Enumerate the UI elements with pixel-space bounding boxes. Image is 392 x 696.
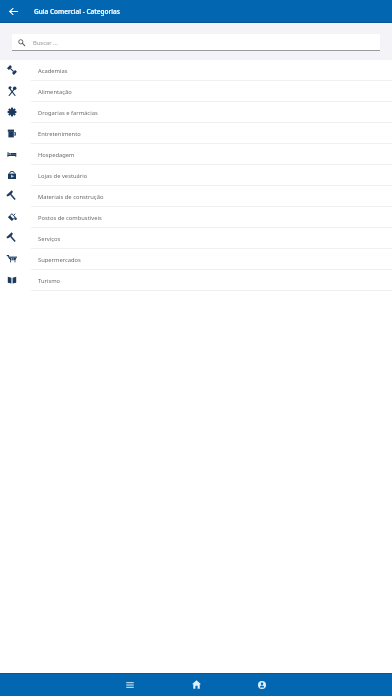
button[interactable]: Account (229, 673, 295, 696)
staticText: Academias (38, 67, 68, 75)
button[interactable]: Serviços (0, 228, 392, 248)
button[interactable]: Lojas de vestuário (0, 165, 392, 185)
staticText: Turismo (38, 277, 61, 285)
button[interactable]: Academias (0, 60, 392, 80)
button[interactable]: Postos de combustíveis (0, 207, 392, 227)
staticText: Drogarias e farmácias (38, 109, 98, 117)
staticText: Entretenimento (38, 130, 81, 138)
button[interactable]: Menu (97, 673, 163, 696)
staticText: Buscar ... (33, 39, 58, 47)
staticText: Alimentação (38, 88, 72, 96)
button[interactable]: Materiais de construção (0, 186, 392, 206)
staticText: Serviços (38, 235, 61, 243)
staticText: Materiais de construção (38, 193, 104, 201)
staticText: Postos de combustíveis (38, 214, 102, 222)
staticText: Hospedagem (38, 151, 75, 159)
staticText: Supermercados (38, 256, 81, 264)
button[interactable]: Drogarias e farmácias (0, 102, 392, 122)
staticText: Guia Comercial - Categorias (34, 7, 120, 16)
staticText: Lojas de vestuário (38, 172, 88, 180)
button[interactable]: Buscar ... (12, 34, 380, 50)
button[interactable]: Back (0, 0, 26, 23)
button[interactable]: Supermercados (0, 249, 392, 269)
button[interactable]: Entretenimento (0, 123, 392, 143)
button[interactable]: Alimentação (0, 81, 392, 101)
button[interactable]: Turismo (0, 270, 392, 290)
button[interactable]: Hospedagem (0, 144, 392, 164)
button[interactable]: Home (163, 673, 229, 696)
